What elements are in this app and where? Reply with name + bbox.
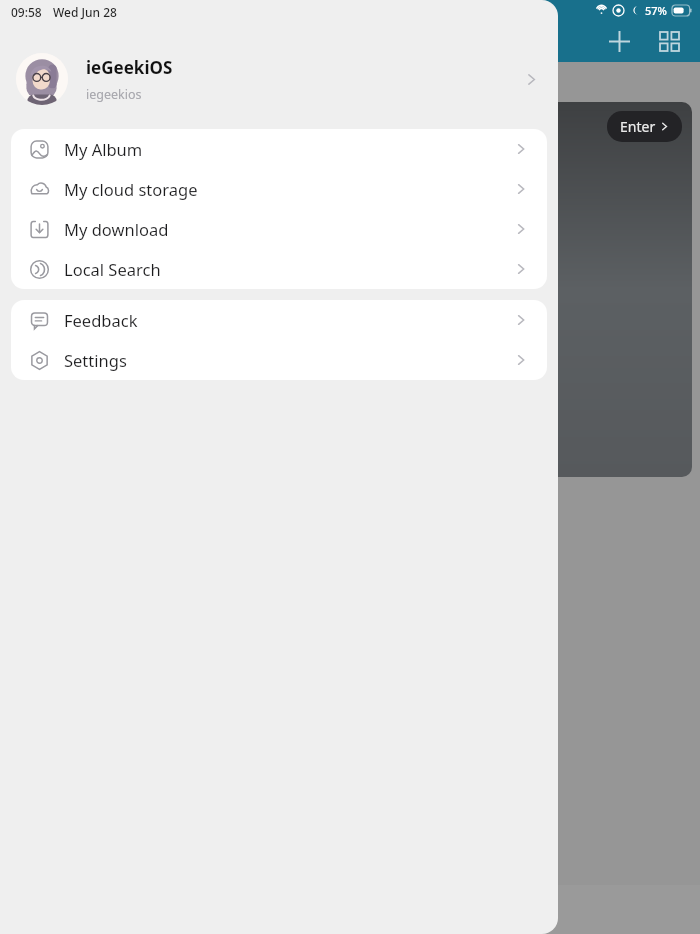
staticText: Local Search xyxy=(64,258,515,280)
button[interactable]: Enter xyxy=(607,111,682,142)
button[interactable]: Enter xyxy=(8,102,692,477)
button[interactable]: Grid view xyxy=(654,26,684,56)
button[interactable]: Add xyxy=(604,26,634,56)
button[interactable]: My Album xyxy=(11,129,547,169)
staticText: Feedback xyxy=(64,309,515,331)
staticText: iegeekios xyxy=(86,86,142,103)
button[interactable]: ieGeekiOS xyxy=(0,48,558,110)
button[interactable]: Feedback xyxy=(11,300,547,340)
button[interactable]: My download xyxy=(11,209,547,249)
staticText: My Album xyxy=(64,138,515,160)
staticText: Enter xyxy=(620,117,656,136)
staticText: 09:58 xyxy=(11,4,42,20)
button[interactable]: My cloud storage xyxy=(11,169,547,209)
staticText: My download xyxy=(64,218,515,240)
staticText: Wed Jun 28 xyxy=(53,4,117,20)
staticText: 57% xyxy=(645,3,667,18)
button[interactable]: Local Search xyxy=(11,249,547,289)
staticText: Settings xyxy=(64,349,515,371)
button[interactable]: Settings xyxy=(11,340,547,380)
staticText: My cloud storage xyxy=(64,178,515,200)
staticText: ieGeekiOS xyxy=(86,56,173,79)
